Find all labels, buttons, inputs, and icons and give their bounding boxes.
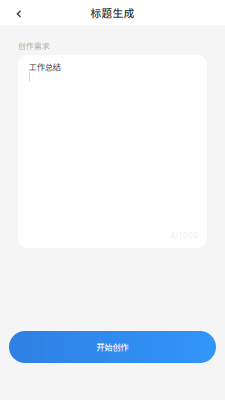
staticText: 开始创作 — [96, 341, 128, 353]
staticText: 工作总结 — [29, 61, 61, 73]
staticText: 标题生成 — [90, 5, 134, 20]
staticText: 4/1000 — [170, 230, 198, 241]
staticText: 创作需求 — [18, 40, 50, 51]
button[interactable]: 开始创作 — [9, 331, 216, 363]
button[interactable]: Back — [7, 0, 31, 25]
